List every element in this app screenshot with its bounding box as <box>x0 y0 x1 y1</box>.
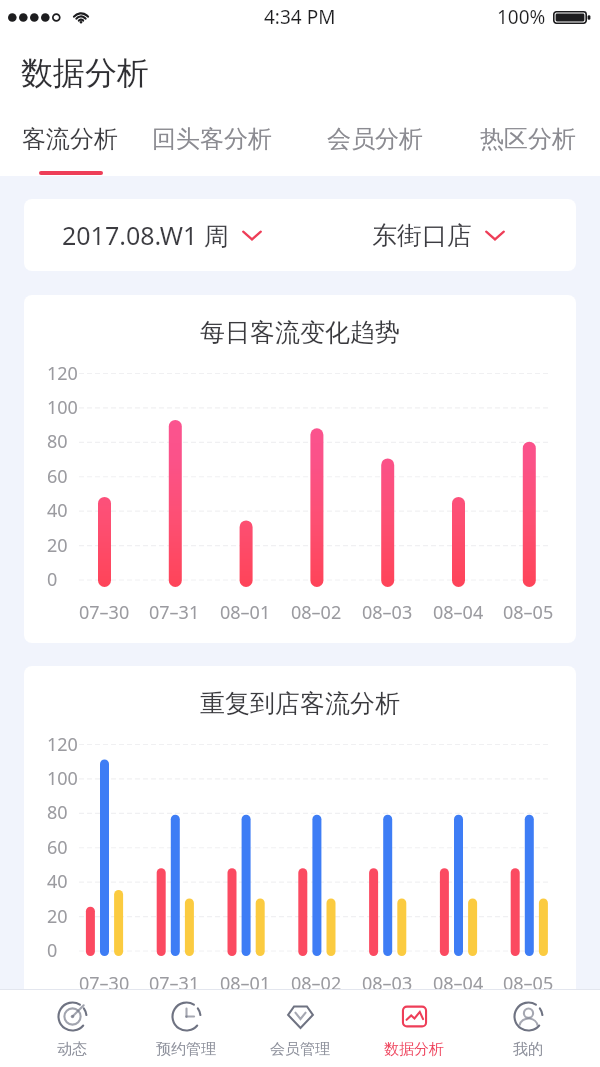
staticText: 08–04 <box>433 600 484 625</box>
staticText: 数据分析 <box>21 53 149 93</box>
button[interactable]: 2017.08.W1 周 <box>38 200 286 270</box>
button[interactable]: 东街口店 <box>348 202 529 269</box>
button[interactable]: 热区分析 <box>466 100 590 178</box>
staticText: 60 <box>47 464 68 489</box>
staticText: 会员分析 <box>327 124 423 154</box>
staticText: 东街口店 <box>372 220 472 251</box>
button[interactable]: 我的 <box>471 990 585 1067</box>
staticText: 2017.08.W1 周 <box>62 218 229 252</box>
staticText: 动态 <box>57 1040 87 1059</box>
staticText: 0 <box>47 567 58 592</box>
staticText: 80 <box>47 429 68 454</box>
staticText: 08–01 <box>220 971 271 996</box>
staticText: 100 <box>47 766 78 791</box>
staticText: 08–02 <box>291 600 342 625</box>
staticText: 120 <box>47 732 78 757</box>
staticText: 预约管理 <box>156 1040 216 1059</box>
staticText: 08–05 <box>503 971 554 996</box>
button[interactable]: 会员管理 <box>243 990 357 1067</box>
staticText: 重复到店客流分析 <box>24 688 576 719</box>
staticText: 每日客流变化趋势 <box>24 317 576 348</box>
staticText: 08–02 <box>291 971 342 996</box>
staticText: 07–30 <box>79 971 130 996</box>
button[interactable]: 回头客分析 <box>138 100 286 178</box>
staticText: 热区分析 <box>480 124 576 154</box>
staticText: 20 <box>47 533 68 558</box>
button[interactable]: 动态 <box>15 990 129 1067</box>
staticText: 07–31 <box>149 971 200 996</box>
staticText: 07–30 <box>79 600 130 625</box>
staticText: 数据分析 <box>384 1040 444 1059</box>
staticText: 40 <box>47 869 68 894</box>
staticText: 07–31 <box>149 600 200 625</box>
button[interactable]: 数据分析 <box>357 990 471 1067</box>
button[interactable]: 预约管理 <box>129 990 243 1067</box>
button[interactable]: 会员分析 <box>313 100 437 178</box>
staticText: 100 <box>47 395 78 420</box>
staticText: 08–03 <box>362 971 413 996</box>
staticText: 20 <box>47 904 68 929</box>
staticText: 40 <box>47 498 68 523</box>
staticText: 08–05 <box>503 600 554 625</box>
staticText: 客流分析 <box>22 124 118 154</box>
staticText: 120 <box>47 361 78 386</box>
staticText: 08–04 <box>433 971 484 996</box>
staticText: 100% <box>497 4 546 30</box>
staticText: 4:34 PM <box>264 4 336 30</box>
staticText: 会员管理 <box>270 1040 330 1059</box>
staticText: 08–03 <box>362 600 413 625</box>
staticText: 回头客分析 <box>152 124 272 154</box>
staticText: 60 <box>47 835 68 860</box>
button[interactable]: 客流分析 <box>8 100 132 178</box>
staticText: 0 <box>47 938 58 963</box>
staticText: 08–01 <box>220 600 271 625</box>
staticText: 80 <box>47 800 68 825</box>
staticText: 我的 <box>513 1040 543 1059</box>
